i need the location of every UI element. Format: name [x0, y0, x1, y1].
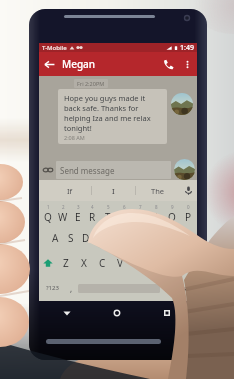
staticText: 9: [171, 204, 174, 210]
staticText: 8: [155, 204, 158, 210]
staticText: 7: [139, 204, 142, 210]
staticText: 2:08 AM: [64, 134, 85, 141]
staticText: .: [165, 283, 168, 294]
staticText: A: [52, 231, 59, 245]
staticText: Hope you guys made it back safe. Thanks …: [64, 93, 163, 133]
button[interactable]: Hope you guys made it back safe. Thanks …: [58, 89, 167, 144]
staticText: Send message: [60, 165, 115, 176]
staticText: 3: [77, 204, 80, 210]
button[interactable]: 8: [148, 201, 164, 226]
button[interactable]: X: [75, 250, 93, 275]
button[interactable]: Back: [42, 301, 92, 324]
staticText: 1:49: [180, 43, 194, 52]
button[interactable]: 3: [70, 201, 85, 226]
staticText: F: [98, 231, 104, 245]
button[interactable]: ,: [65, 275, 78, 301]
staticText: 0: [187, 204, 190, 210]
button[interactable]: The: [136, 180, 179, 201]
button[interactable]: Home: [92, 301, 142, 324]
button[interactable]: Shift: [39, 250, 57, 275]
button[interactable]: Attach file: [39, 161, 56, 178]
staticText: I: [154, 210, 158, 224]
button[interactable]: .: [160, 275, 173, 301]
staticText: D: [82, 231, 90, 245]
staticText: 5: [107, 204, 110, 210]
staticText: T: [105, 210, 111, 224]
button[interactable]: 7: [132, 201, 148, 226]
button[interactable]: Backspace: [179, 250, 197, 275]
button[interactable]: V: [111, 250, 128, 275]
button[interactable]: I: [92, 180, 135, 201]
staticText: 2: [62, 204, 65, 210]
button[interactable]: B: [128, 250, 145, 275]
staticText: If: [67, 186, 73, 196]
staticText: I: [112, 186, 115, 196]
button[interactable]: G: [108, 226, 124, 250]
staticText: ,: [70, 283, 73, 294]
button[interactable]: M: [162, 250, 179, 275]
staticText: ?123: [46, 284, 59, 292]
button[interactable]: K: [156, 226, 172, 250]
button[interactable]: More options: [179, 56, 195, 72]
button[interactable]: 6: [116, 201, 132, 226]
button[interactable]: Call: [157, 53, 179, 75]
button[interactable]: ?123: [39, 275, 65, 301]
button[interactable]: 1: [40, 201, 55, 226]
staticText: 6: [123, 204, 126, 210]
button[interactable]: J: [140, 226, 156, 250]
button[interactable]: L: [172, 226, 188, 250]
button[interactable]: Recent apps: [142, 301, 192, 324]
staticText: Z: [63, 256, 69, 270]
button[interactable]: 5: [100, 201, 116, 226]
staticText: Q: [44, 210, 52, 224]
staticText: C: [99, 256, 106, 270]
staticText: V: [117, 256, 123, 270]
staticText: 1: [47, 204, 50, 210]
button[interactable]: 4: [85, 201, 100, 226]
button[interactable]: Voice input: [179, 180, 197, 201]
staticText: The: [151, 186, 165, 196]
staticText: E: [75, 210, 81, 224]
staticText: Megan: [62, 57, 96, 71]
button[interactable]: H: [124, 226, 140, 250]
staticText: S: [68, 231, 74, 245]
staticText: U: [136, 210, 144, 224]
staticText: O: [168, 210, 176, 224]
staticText: L: [177, 231, 183, 245]
button[interactable]: D: [78, 226, 93, 250]
button[interactable]: 2: [55, 201, 70, 226]
button[interactable]: If: [49, 180, 91, 201]
button[interactable]: C: [93, 250, 111, 275]
button[interactable]: Z: [57, 250, 75, 275]
button[interactable]: Enter: [173, 275, 197, 301]
button[interactable]: S: [63, 226, 78, 250]
staticText: Fri 2:20PM: [77, 80, 105, 87]
button[interactable]: N: [145, 250, 162, 275]
staticText: R: [89, 210, 96, 224]
staticText: T-Mobile: [42, 44, 67, 52]
staticText: B: [133, 256, 140, 270]
staticText: X: [81, 256, 87, 270]
button[interactable]: 9: [164, 201, 180, 226]
staticText: P: [185, 210, 192, 224]
button[interactable]: 0: [180, 201, 196, 226]
button[interactable]: F: [93, 226, 108, 250]
staticText: 4: [91, 204, 94, 210]
staticText: Y: [121, 210, 127, 224]
button[interactable]: Send message: [56, 161, 171, 179]
staticText: W: [58, 210, 68, 224]
button[interactable]: Navigate up: [39, 54, 59, 74]
button[interactable]: A: [48, 226, 63, 250]
